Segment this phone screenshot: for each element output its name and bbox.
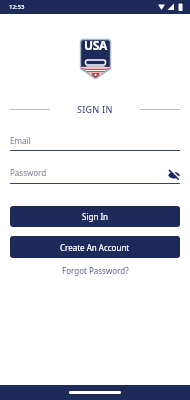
staticText: Password bbox=[10, 167, 168, 178]
staticText: USA bbox=[84, 37, 108, 53]
staticText: Sign In bbox=[82, 211, 109, 222]
button[interactable]: Email bbox=[10, 135, 180, 151]
staticText: Email bbox=[10, 135, 31, 146]
staticText: 12:53 bbox=[9, 3, 25, 11]
staticText: SIGN IN bbox=[77, 103, 113, 115]
button[interactable]: Password bbox=[10, 166, 180, 184]
button[interactable]: Create An Account bbox=[10, 236, 180, 258]
staticText: Create An Account bbox=[60, 242, 130, 253]
button[interactable]: Sign In bbox=[10, 206, 180, 227]
button[interactable]: Forgot Password? bbox=[62, 265, 129, 276]
